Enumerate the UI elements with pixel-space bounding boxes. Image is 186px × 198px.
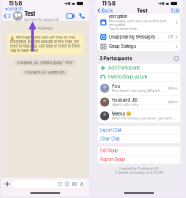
staticText: Also there! I am using WhatsApp [112,89,163,93]
button[interactable]: 2 [1,11,89,21]
staticText: Invite to Group via Link [108,74,147,79]
staticText: Created yesterday at 8:29 PM [115,170,163,175]
staticText: Search [8,6,23,12]
staticText: Tap to learn more. [109,27,138,31]
staticText: Edit [171,7,180,14]
staticText: Encryption [109,14,127,19]
staticText: Created by Husband JID [118,166,159,170]
staticText: 2 [8,13,11,19]
staticText: 3 Participants [99,56,132,61]
staticText: Off [168,35,173,39]
button[interactable]: Exit Group [98,146,180,155]
staticText: Admin [168,86,178,90]
staticText: Disappearing Messages [109,34,155,39]
staticText: Back [101,7,113,14]
staticText: You [112,84,121,89]
staticText: Husband JID added you [25,70,65,75]
button[interactable]: Back [95,7,113,14]
staticText: 11:58 [8,0,22,7]
staticText: Husband JID [112,97,138,103]
staticText: Report Group [100,157,125,162]
staticText: When life knocks you down, get back up [112,116,175,120]
button[interactable]: Neema 😊 [98,109,180,122]
button[interactable]: Export Chat [98,126,180,134]
staticText: Admin [168,100,178,104]
staticText: Messages and calls are end-to-end encryp… [109,19,166,27]
staticText: 🔒 Messages and calls are end-to-end encr… [10,35,81,53]
staticText: Group Settings [109,44,136,49]
staticText: Test [24,10,35,17]
staticText: Yesterday [37,26,53,30]
staticText: Exit Group [100,148,118,153]
staticText: Urgent calls only [112,103,139,107]
button[interactable]: Clear Chat [98,135,180,143]
staticText: Export Chat [100,128,121,133]
staticText: Add Participants [108,65,140,70]
button[interactable]: Husband JID [98,95,180,109]
button[interactable]: Invite to Group via Link [98,73,180,81]
staticText: Husband JID created group "Test" [17,61,74,65]
button[interactable]: Report Group [98,155,180,164]
staticText: Neema 😊 [112,111,131,116]
staticText: 11:58 [102,0,116,7]
staticText: tap here for group info [24,17,59,22]
button[interactable]: You [98,82,180,95]
button[interactable]: Add Participants [98,64,180,72]
staticText: Test [137,7,148,14]
staticText: Clear Chat [100,136,119,141]
button[interactable]: Edit [171,7,183,14]
